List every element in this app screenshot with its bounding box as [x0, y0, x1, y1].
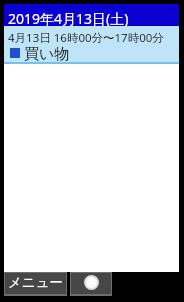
staticText: 買い物 [24, 45, 70, 64]
button[interactable]: 2019年4月13日(土) [4, 4, 179, 26]
button[interactable]: 4月13日 16時00分〜17時00分 [4, 26, 179, 62]
button[interactable]: Home [71, 273, 111, 294]
staticText: メニュー [8, 274, 63, 291]
button[interactable]: メニュー [5, 273, 66, 294]
staticText: 2019年4月13日(土) [8, 9, 129, 28]
staticText: 4月13日 16時00分〜17時00分 [8, 30, 164, 46]
